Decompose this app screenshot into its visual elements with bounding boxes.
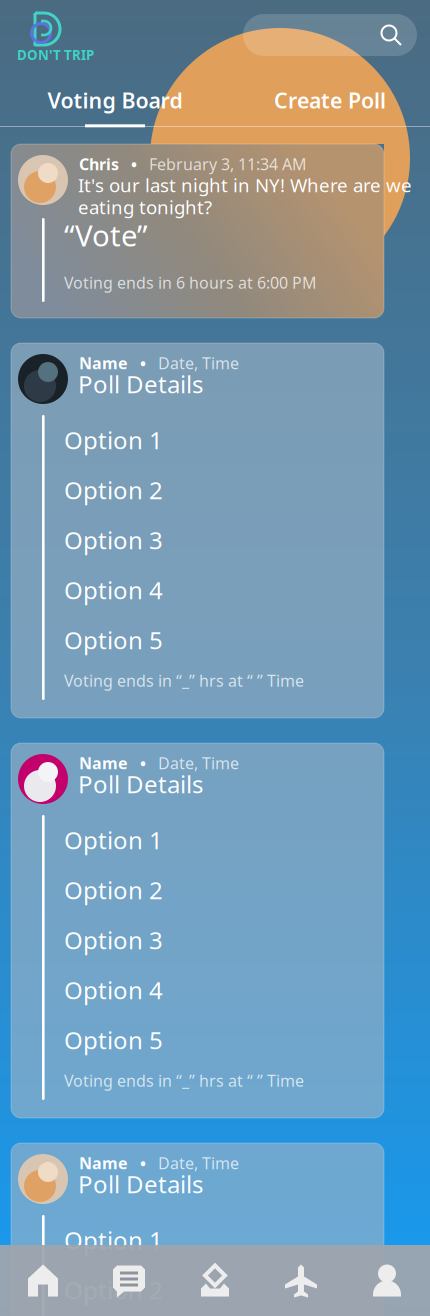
button[interactable]: Name: [11, 743, 384, 1118]
staticText: Date, Time: [158, 352, 239, 374]
staticText: Name: [79, 1152, 128, 1174]
button[interactable]: Name: [11, 343, 384, 718]
staticText: Name: [79, 352, 128, 374]
staticText: Option 3: [64, 924, 163, 956]
staticText: •: [128, 752, 158, 774]
staticText: Poll Details: [78, 368, 203, 400]
staticText: Option 2: [64, 1274, 163, 1306]
staticText: Option 2: [64, 474, 163, 506]
staticText: Option 5: [64, 1024, 163, 1056]
button[interactable]: Name: [11, 1143, 384, 1316]
staticText: Option 2: [64, 874, 163, 906]
staticText: Option 3: [64, 524, 163, 556]
staticText: eating tonight?: [78, 195, 212, 219]
staticText: •: [128, 1152, 158, 1174]
staticText: DON'T TRIP: [17, 46, 94, 64]
button[interactable]: Vote: [172, 1245, 258, 1316]
button[interactable]: Messages: [86, 1245, 172, 1316]
staticText: Option 4: [64, 974, 163, 1006]
staticText: Date, Time: [158, 752, 239, 774]
staticText: Option 4: [64, 574, 163, 606]
staticText: Voting Board: [47, 86, 182, 114]
staticText: •: [128, 352, 158, 374]
staticText: Voting ends in “_” hrs at “ ” Time: [64, 670, 304, 691]
staticText: •: [119, 153, 149, 175]
staticText: It's our last night in NY! Where are we: [78, 173, 412, 197]
staticText: Option 1: [64, 824, 163, 856]
button[interactable]: Voting Board: [0, 86, 230, 125]
button[interactable]: Profile: [344, 1245, 430, 1316]
staticText: Poll Details: [78, 768, 203, 800]
staticText: Option 1: [64, 424, 163, 456]
staticText: Option 5: [64, 624, 163, 656]
button[interactable]: Chris: [11, 144, 384, 318]
staticText: Chris: [79, 153, 119, 175]
staticText: Date, Time: [158, 1152, 239, 1174]
staticText: “Vote”: [64, 215, 148, 254]
staticText: Option 1: [64, 1224, 163, 1256]
staticText: Poll Details: [78, 1168, 203, 1200]
button[interactable]: Search: [243, 14, 417, 56]
button[interactable]: Create Poll: [230, 86, 430, 125]
staticText: Name: [79, 752, 128, 774]
staticText: Create Poll: [274, 86, 386, 114]
button[interactable]: Trips: [258, 1245, 344, 1316]
staticText: February 3, 11:34 AM: [149, 153, 307, 175]
staticText: Voting ends in “_” hrs at “ ” Time: [64, 1070, 304, 1091]
button[interactable]: Home: [0, 1245, 86, 1316]
staticText: Voting ends in 6 hours at 6:00 PM: [64, 272, 317, 293]
